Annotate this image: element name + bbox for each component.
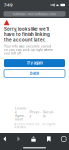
staticText: Your info was securely saved so you can …: [4, 45, 53, 55]
button[interactable]: Share: [30, 135, 37, 143]
button[interactable]: Back: [2, 135, 8, 143]
staticText: © 2024 Intuit Inc. All rights reserved: [14, 122, 55, 129]
button[interactable]: Tabs: [60, 135, 67, 142]
button[interactable]: Security: [43, 110, 54, 118]
staticText: Try again: [26, 61, 42, 65]
button[interactable]: Forward: [16, 135, 22, 143]
staticText: Security: [43, 110, 54, 118]
button[interactable]: Back: [4, 69, 65, 77]
button[interactable]: Privacy: [29, 110, 40, 118]
staticText: License Agreement: [15, 106, 27, 121]
staticText: Sorry, looks like we'll have to finish l…: [4, 26, 50, 42]
button[interactable]: Bookmarks: [45, 135, 52, 143]
button[interactable]: Try again: [4, 59, 65, 67]
button[interactable]: turbotax-rest.turbotax.com: [3, 11, 65, 17]
button[interactable]: License Agreement: [15, 106, 27, 121]
staticText: 7:49: [4, 3, 13, 7]
staticText: Back: [30, 71, 39, 76]
staticText: Privacy: [29, 110, 40, 118]
staticText: turbotax-rest.turbotax.com: [13, 12, 56, 16]
